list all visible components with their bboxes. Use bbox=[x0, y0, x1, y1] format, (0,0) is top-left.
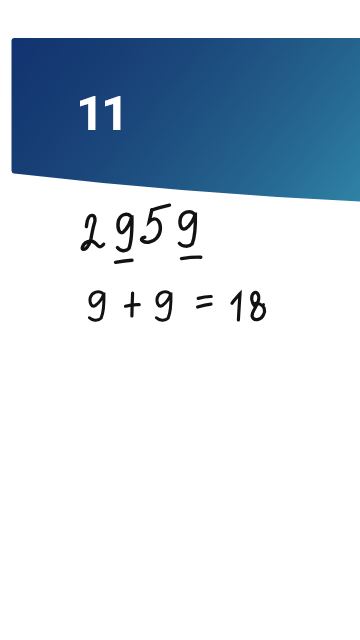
staticText: 11 bbox=[76, 85, 127, 142]
